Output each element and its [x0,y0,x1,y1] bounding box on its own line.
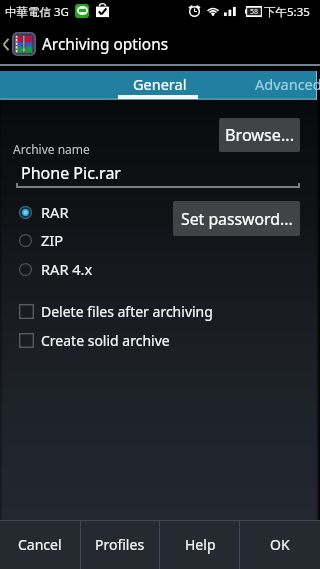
staticText: Delete files after archiving [41,302,213,321]
button[interactable]: Back [0,22,12,66]
staticText: OK [270,535,290,554]
staticText: General [133,74,187,94]
staticText: Help [185,535,216,554]
button[interactable]: General [120,71,200,97]
button[interactable]: Help [160,520,240,569]
staticText: RAR [41,202,69,222]
staticText: Browse... [225,124,294,146]
button[interactable]: RAR [0,198,320,226]
button[interactable]: Browse... [219,118,300,152]
button[interactable]: Create solid archive [0,326,320,354]
staticText: 58 [250,7,259,17]
staticText: Profiles [95,535,145,554]
staticText: Advanced [255,74,320,94]
button[interactable]: Advanced [251,71,320,97]
button[interactable]: Cancel [0,520,80,569]
button[interactable]: OK [240,520,320,569]
button[interactable]: Set password... [173,201,300,236]
button[interactable]: Profiles [80,520,160,569]
staticText: Create solid archive [41,331,170,350]
staticText: Set password... [181,208,293,230]
staticText: RAR 4.x [41,259,93,279]
staticText: Cancel [18,535,62,554]
button[interactable]: Delete files after archiving [0,297,320,325]
staticText: Archive name [13,141,90,157]
staticText: Archiving options [42,34,169,55]
button[interactable]: ZIP [0,226,320,254]
staticText: 中華電信 3G [5,4,69,20]
button[interactable]: RAR 4.x [0,255,320,283]
staticText: Phone Pic.rar [21,162,121,184]
staticText: ZIP [41,230,64,250]
staticText: 下午5:35 [264,4,310,20]
